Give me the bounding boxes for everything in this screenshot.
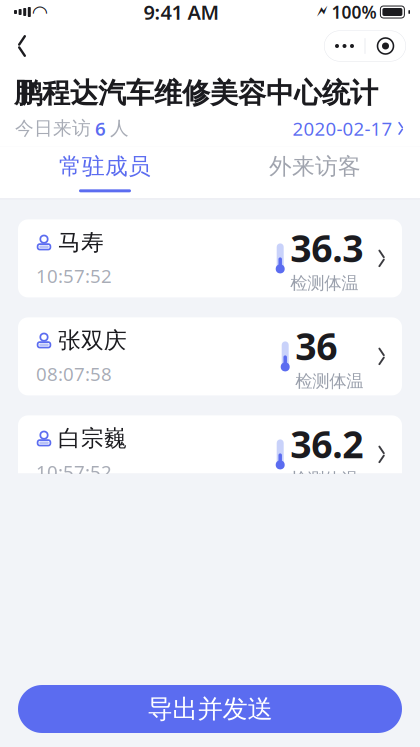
staticText: 9:41 AM — [144, 0, 220, 25]
staticText: 10:57:52 — [36, 263, 112, 288]
staticText: 常驻成员 — [59, 152, 151, 180]
staticText: ◠ — [33, 1, 47, 23]
staticText: 检测体温 — [290, 664, 358, 686]
staticText: 36.2 — [290, 419, 363, 469]
staticText: 检测体温 — [290, 272, 358, 294]
button[interactable]: More — [324, 31, 364, 61]
staticText: 马寿 — [58, 229, 104, 256]
button[interactable]: 张双喜 — [18, 611, 402, 689]
button[interactable]: 王五 — [18, 709, 402, 747]
button[interactable]: 导出并发送 — [18, 685, 402, 733]
button[interactable]: 白宗巍 — [18, 415, 402, 493]
button[interactable]: Back — [0, 24, 44, 68]
staticText: 36.4 — [290, 713, 363, 747]
staticText: 鹏程达汽车维修美容中心统计 — [14, 76, 378, 110]
staticText: 6 — [95, 116, 106, 141]
staticText: 王五 — [58, 719, 104, 746]
button[interactable]: 常驻成员 — [0, 146, 210, 198]
staticText: 导出并发送 — [147, 693, 272, 724]
staticText: 2020-02-17 — [292, 116, 392, 141]
staticText: 🗲 — [316, 4, 327, 20]
staticText: 08:07:58 — [36, 361, 112, 386]
staticText: 10:57:52 — [36, 459, 112, 484]
staticText: 白宗巍 — [58, 425, 127, 452]
staticText: 100% — [331, 0, 376, 23]
staticText: 36.3 — [290, 223, 363, 273]
staticText: 张双庆 — [58, 327, 127, 354]
staticText: 36 — [295, 321, 337, 371]
button[interactable]: 2020-02-17 — [292, 116, 404, 141]
button[interactable]: 马寿 — [18, 219, 402, 297]
staticText: 检测体温 — [290, 468, 358, 490]
staticText: 外来访客 — [269, 152, 361, 180]
staticText: 人 — [110, 117, 129, 140]
staticText: 今日来访 — [15, 117, 91, 140]
button[interactable]: 张双庆 — [18, 317, 402, 395]
button[interactable]: 外来访客 — [210, 146, 420, 198]
staticText: 检测体温 — [295, 370, 363, 392]
button[interactable]: Close — [365, 31, 405, 61]
